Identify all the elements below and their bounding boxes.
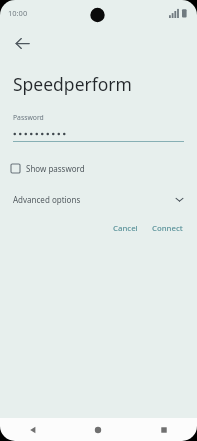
staticText: Cancel	[113, 223, 138, 234]
button[interactable]: Back	[0, 418, 65, 441]
button[interactable]: Cancel	[108, 219, 143, 238]
button[interactable]: Connect	[147, 219, 188, 238]
button[interactable]: Advanced options	[0, 190, 197, 209]
staticText: Password	[13, 113, 44, 122]
staticText: Speedperform	[13, 72, 132, 96]
staticText: Connect	[152, 223, 183, 234]
button[interactable]: Back	[5, 26, 39, 60]
button[interactable]: Password	[13, 113, 184, 142]
button[interactable]: Home	[65, 418, 131, 441]
button[interactable]: Show password	[11, 160, 186, 177]
staticText: Show password	[26, 163, 85, 174]
button[interactable]: Recent apps	[131, 418, 197, 441]
staticText: Advanced options	[13, 194, 81, 205]
staticText: 10:00	[8, 8, 28, 18]
